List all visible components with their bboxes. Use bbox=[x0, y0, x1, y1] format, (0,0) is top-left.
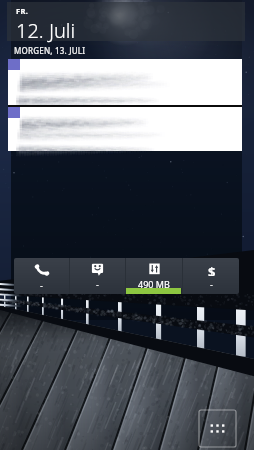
button[interactable]: FR. bbox=[7, 2, 245, 41]
button[interactable]: Phone bbox=[14, 258, 69, 294]
staticText: MORGEN, 13. JULI bbox=[14, 45, 86, 56]
other: Messages bbox=[91, 263, 104, 276]
other: Data usage bbox=[148, 263, 161, 276]
staticText: 490 MB bbox=[138, 278, 170, 290]
button[interactable] bbox=[8, 107, 242, 151]
button[interactable]: Apps bbox=[199, 410, 236, 447]
staticText: - bbox=[40, 279, 43, 291]
staticText: - bbox=[210, 278, 213, 290]
button[interactable] bbox=[8, 59, 242, 105]
button[interactable]: Messages bbox=[70, 258, 125, 294]
other: Phone bbox=[35, 263, 49, 277]
button[interactable]: Data usage bbox=[126, 258, 182, 294]
staticText: $ bbox=[208, 263, 216, 276]
button[interactable]: Cost bbox=[183, 258, 239, 294]
staticText: 12. Juli bbox=[16, 17, 76, 44]
staticText: FR. bbox=[16, 6, 29, 16]
other: Cost bbox=[205, 263, 218, 276]
staticText: - bbox=[96, 278, 99, 290]
